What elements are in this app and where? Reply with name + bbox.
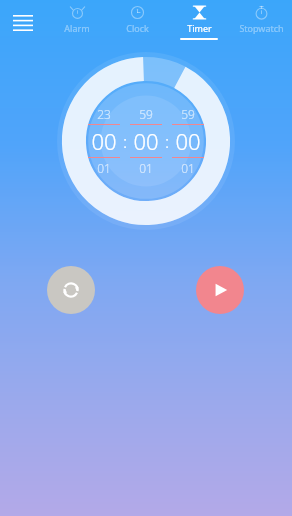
- button[interactable]: 23: [88, 106, 120, 176]
- staticText: 00: [133, 126, 159, 156]
- staticText: 00: [91, 126, 117, 156]
- staticText: 00: [175, 126, 201, 156]
- button[interactable]: Alarm: [46, 0, 107, 46]
- button[interactable]: Open navigation menu: [0, 0, 46, 46]
- staticText: :: [165, 130, 170, 153]
- staticText: 01: [97, 160, 111, 176]
- button[interactable]: Start timer: [196, 266, 244, 314]
- staticText: 59: [139, 106, 153, 122]
- button[interactable]: 23: [57, 52, 235, 230]
- button[interactable]: Clock: [107, 0, 168, 46]
- button[interactable]: 59: [172, 106, 204, 176]
- button[interactable]: 59: [130, 106, 162, 176]
- button[interactable]: Stopwatch: [230, 0, 292, 46]
- staticText: 59: [181, 106, 195, 122]
- staticText: Stopwatch: [239, 22, 284, 34]
- staticText: Clock: [126, 22, 149, 34]
- staticText: :: [123, 130, 128, 153]
- staticText: Timer: [187, 22, 212, 34]
- staticText: 23: [97, 106, 111, 122]
- staticText: 01: [181, 160, 195, 176]
- staticText: Alarm: [64, 22, 90, 34]
- button[interactable]: Timer: [168, 0, 230, 46]
- button[interactable]: Reset timer: [47, 266, 95, 314]
- staticText: 01: [139, 160, 153, 176]
